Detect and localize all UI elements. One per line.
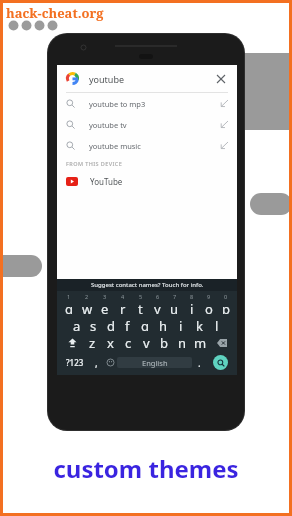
staticText: y	[154, 300, 161, 314]
button[interactable]: v	[137, 334, 155, 351]
button[interactable]: Backspace	[209, 334, 234, 351]
staticText: r	[120, 300, 126, 314]
button[interactable]: .	[192, 354, 206, 371]
staticText: i	[190, 300, 194, 314]
staticText: YouTube	[90, 176, 123, 187]
button[interactable]: p	[217, 300, 234, 314]
button[interactable]: z	[84, 334, 101, 351]
button[interactable]: youtube music	[57, 135, 237, 156]
button[interactable]: g	[136, 317, 154, 331]
staticText: e	[101, 300, 109, 314]
button[interactable]: l	[208, 317, 226, 331]
staticText: d	[107, 317, 115, 331]
staticText: 5	[139, 293, 143, 300]
button[interactable]: d	[102, 317, 119, 331]
button[interactable]: youtube tv	[57, 114, 237, 135]
staticText: 3	[103, 293, 107, 300]
button[interactable]: t	[132, 300, 149, 314]
staticText: hack-cheat.org	[6, 4, 104, 22]
button[interactable]: y	[149, 300, 166, 314]
staticText: Suggest contact names? Touch for info.	[91, 281, 204, 289]
staticText: t	[138, 300, 143, 314]
staticText: v	[143, 334, 150, 351]
staticText: youtube tv	[89, 120, 127, 130]
button[interactable]: youtube to mp3	[57, 93, 237, 114]
button[interactable]: ,	[89, 354, 103, 371]
button[interactable]: c	[119, 334, 137, 351]
button[interactable]: k	[190, 317, 208, 331]
staticText: x	[107, 334, 114, 351]
staticText: English	[142, 358, 168, 368]
staticText: 1	[67, 293, 71, 300]
button[interactable]: u	[166, 300, 183, 314]
staticText: h	[159, 317, 168, 331]
button[interactable]: m	[191, 334, 209, 351]
staticText: 7	[173, 293, 177, 300]
button[interactable]: a	[68, 317, 85, 331]
staticText: custom themes	[0, 452, 292, 485]
staticText: j	[179, 317, 183, 331]
staticText: ,	[95, 356, 98, 370]
staticText: 8	[190, 293, 194, 300]
staticText: s	[90, 317, 97, 331]
button[interactable]: o	[200, 300, 217, 314]
staticText: f	[125, 317, 130, 331]
staticText: g	[141, 317, 149, 331]
staticText: .	[198, 356, 201, 370]
button[interactable]: Search	[213, 355, 228, 370]
staticText: 9	[207, 293, 211, 300]
button[interactable]: s	[85, 317, 102, 331]
button[interactable]: Suggest contact names? Touch for info.	[57, 279, 237, 291]
button[interactable]: f	[119, 317, 136, 331]
staticText: 6	[156, 293, 160, 300]
staticText: p	[222, 300, 230, 314]
staticText: n	[178, 334, 187, 351]
button[interactable]: j	[172, 317, 190, 331]
button[interactable]: Clear	[214, 72, 228, 86]
staticText: u	[170, 300, 179, 314]
button[interactable]: r	[114, 300, 132, 314]
button[interactable]: youtube	[57, 65, 237, 92]
button[interactable]: h	[154, 317, 172, 331]
button[interactable]: Emoji	[103, 354, 117, 371]
button[interactable]: YouTube	[57, 172, 237, 190]
staticText: youtube	[89, 73, 125, 85]
staticText: o	[205, 300, 213, 314]
staticText: m	[194, 334, 207, 351]
staticText: w	[82, 300, 93, 314]
staticText: ?123	[66, 357, 84, 368]
button[interactable]: w	[78, 300, 96, 314]
button[interactable]: x	[101, 334, 119, 351]
staticText: youtube to mp3	[89, 99, 146, 109]
staticText: b	[160, 334, 168, 351]
button[interactable]: ?123	[60, 354, 89, 371]
staticText: z	[89, 334, 96, 351]
staticText: 2	[85, 293, 89, 300]
staticText: a	[73, 317, 81, 331]
button[interactable]: i	[183, 300, 200, 314]
button[interactable]: q	[60, 300, 78, 314]
staticText: youtube music	[89, 141, 141, 151]
staticText: FROM THIS DEVICE	[66, 160, 123, 167]
button[interactable]: Shift	[60, 334, 84, 351]
button[interactable]: e	[96, 300, 114, 314]
staticText: k	[196, 317, 203, 331]
button[interactable]: n	[173, 334, 191, 351]
staticText: c	[125, 334, 132, 351]
button[interactable]: b	[155, 334, 173, 351]
staticText: 0	[224, 293, 228, 300]
staticText: l	[215, 317, 219, 331]
staticText: 4	[121, 293, 125, 300]
staticText: q	[65, 300, 73, 314]
button[interactable]: English	[117, 357, 192, 368]
